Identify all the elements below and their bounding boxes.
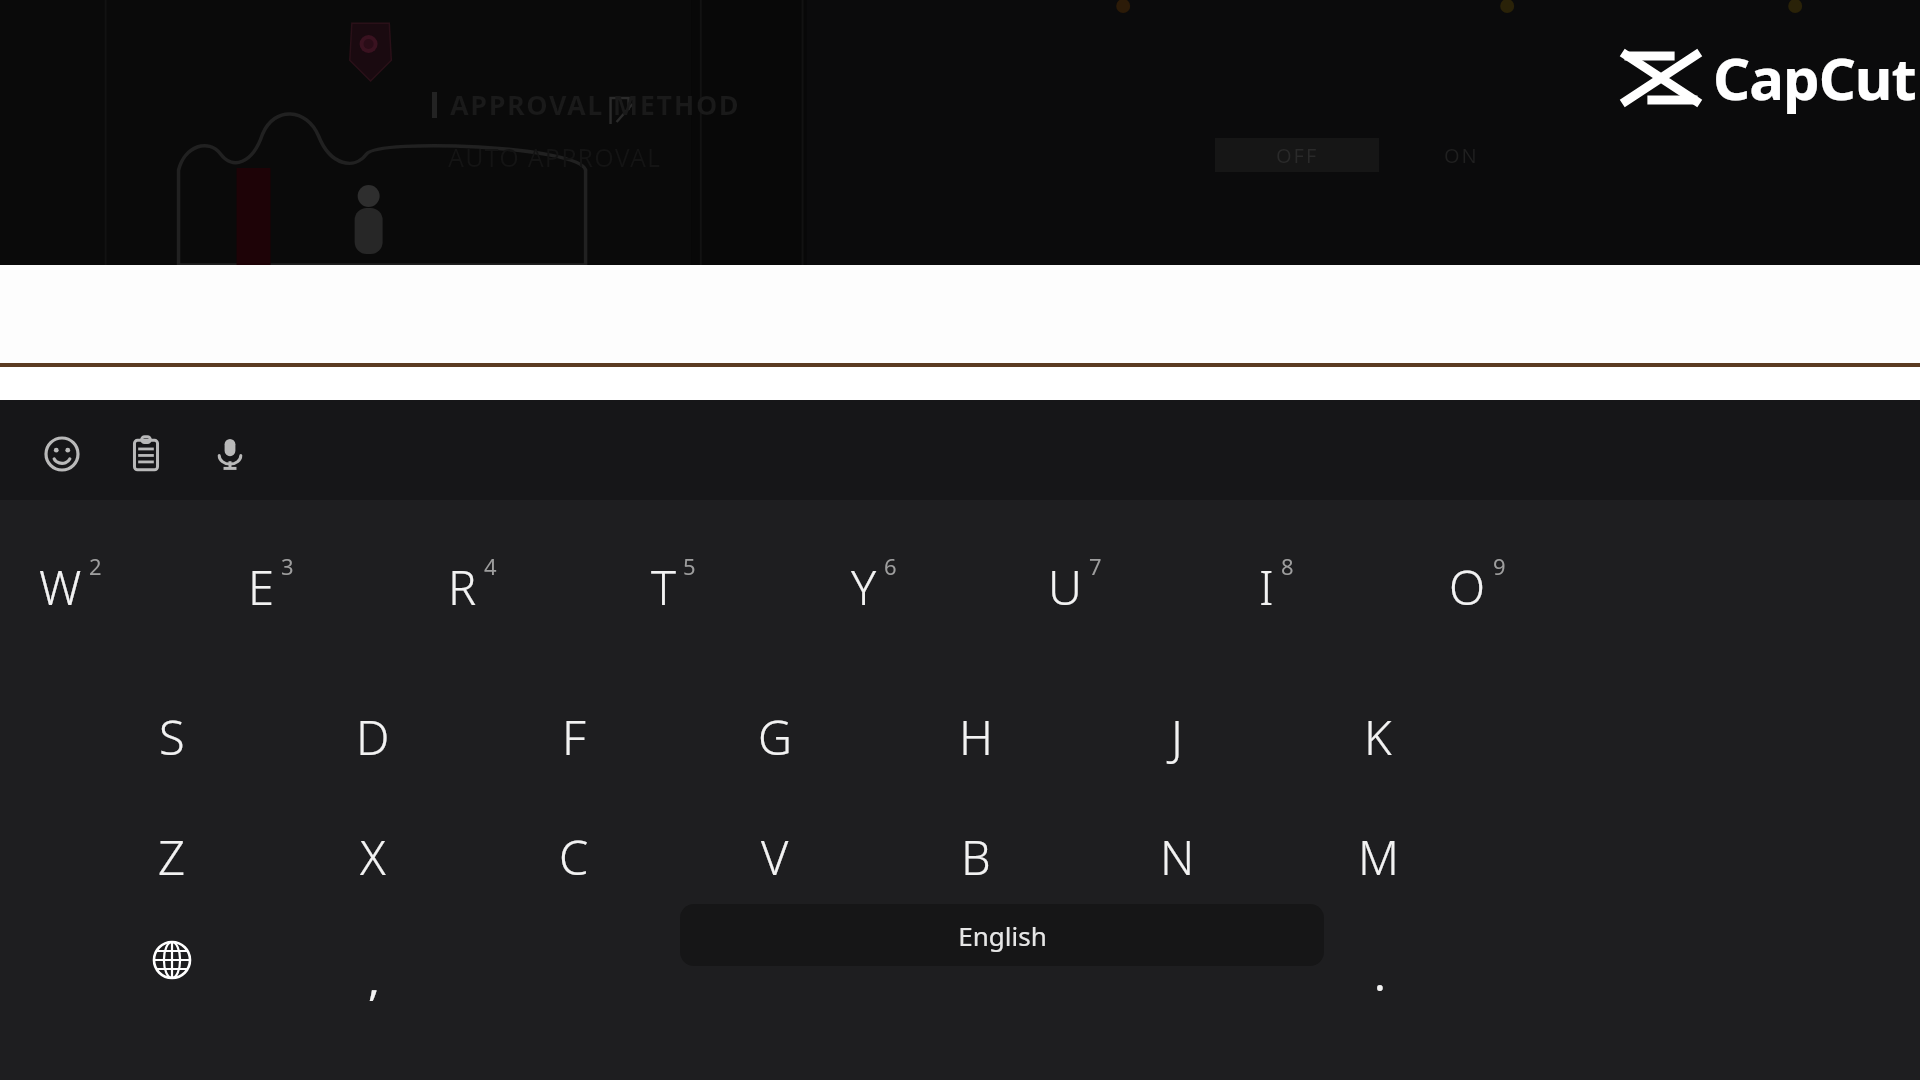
button[interactable]: S (84, 678, 260, 796)
staticText: 7 (1089, 551, 1102, 581)
button[interactable]: English (680, 904, 1324, 966)
button[interactable]: Clipboard (114, 422, 178, 486)
button[interactable]: W (0, 528, 158, 646)
staticText: U (1048, 555, 1082, 619)
staticText: I (1259, 555, 1274, 619)
button[interactable]: T (585, 528, 761, 646)
staticText: 2 (89, 551, 102, 581)
button[interactable]: Z (84, 798, 260, 916)
button[interactable]: N (1089, 798, 1265, 916)
button[interactable]: R (384, 528, 560, 646)
staticText: ON (1444, 142, 1479, 169)
staticText: K (1364, 705, 1392, 769)
staticText: 5 (683, 551, 696, 581)
button[interactable]: Change language (124, 912, 220, 1008)
staticText: English (958, 918, 1047, 953)
button[interactable]: E (183, 528, 359, 646)
button[interactable]: Y (786, 528, 962, 646)
staticText: 4 (484, 551, 497, 581)
staticText: G (758, 705, 793, 769)
button[interactable]: K (1290, 678, 1466, 796)
staticText: , (368, 948, 380, 1008)
button[interactable]: B (888, 798, 1064, 916)
staticText: E (248, 555, 274, 619)
button[interactable]: X (285, 798, 461, 916)
staticText: V (761, 825, 789, 889)
button[interactable]: V (687, 798, 863, 916)
staticText: 8 (1281, 551, 1294, 581)
staticText: B (961, 825, 991, 889)
button[interactable]: C (486, 798, 662, 916)
staticText: T (651, 555, 676, 619)
staticText: 3 (281, 551, 294, 581)
button[interactable]: H (888, 678, 1064, 796)
button[interactable]: F (486, 678, 662, 796)
button[interactable]: G (687, 678, 863, 796)
staticText: . (1374, 944, 1386, 1004)
button[interactable]: J (1089, 678, 1265, 796)
staticText: C (559, 825, 589, 889)
staticText: R (448, 555, 477, 619)
staticText: AUTO APPROVAL (448, 140, 662, 174)
button[interactable]: Emoji (30, 422, 94, 486)
button[interactable]: , (326, 912, 422, 1008)
staticText: F (562, 705, 586, 769)
staticText: Y (851, 555, 877, 619)
button[interactable]: I (1188, 528, 1364, 646)
staticText: X (360, 825, 386, 889)
staticText: H (959, 705, 993, 769)
staticText: CapCut (1713, 38, 1916, 117)
staticText: W (39, 555, 82, 619)
button[interactable]: M (1290, 798, 1466, 916)
button[interactable]: U (987, 528, 1163, 646)
staticText: Z (158, 825, 186, 889)
button[interactable]: D (285, 678, 461, 796)
staticText: S (159, 705, 185, 769)
staticText: 9 (1493, 551, 1506, 581)
staticText: O (1449, 555, 1486, 619)
button[interactable]: O (1389, 528, 1565, 646)
staticText: APPROVAL METHOD (450, 86, 741, 123)
staticText: 6 (884, 551, 897, 581)
staticText: M (1358, 825, 1399, 889)
staticText: N (1160, 825, 1195, 889)
staticText: OFF (1276, 142, 1319, 169)
button[interactable]: . (1332, 912, 1428, 1008)
staticText: D (356, 705, 390, 769)
staticText: J (1171, 705, 1183, 769)
button[interactable]: Voice input (198, 422, 262, 486)
